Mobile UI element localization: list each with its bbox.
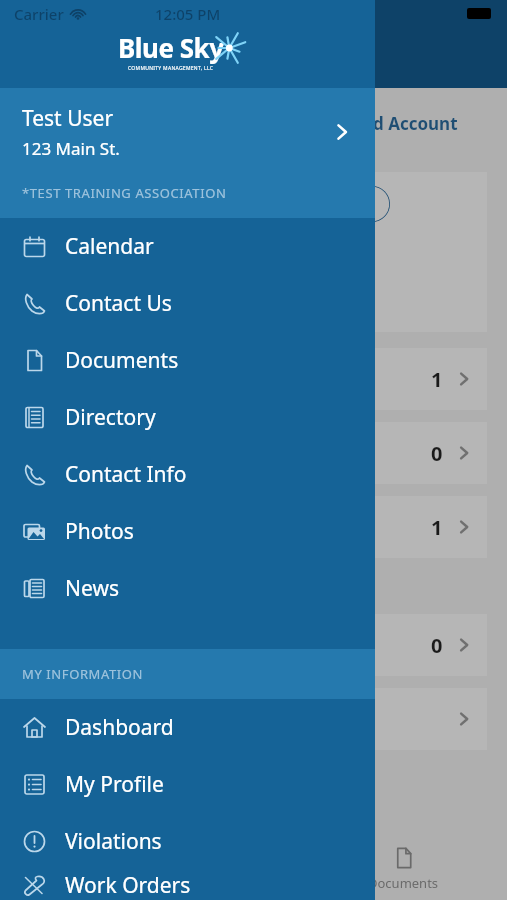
button[interactable]: Directory — [0, 389, 375, 446]
button[interactable]: Dashboard — [0, 699, 375, 756]
staticText: 123 Main St. — [22, 137, 120, 160]
button[interactable]: Documents — [0, 332, 375, 389]
staticText: Work Orders — [65, 871, 191, 900]
staticText: Dashboard — [65, 713, 174, 742]
staticText: Carrier — [14, 4, 64, 24]
staticText: Blue Sky — [118, 30, 224, 65]
staticText: 12:05 PM — [155, 4, 221, 24]
staticText: Calendar — [65, 232, 154, 261]
staticText: Contact Info — [65, 460, 187, 489]
button[interactable] — [300, 688, 487, 750]
button[interactable]: My Profile — [0, 756, 375, 813]
button[interactable]: Contact Us — [0, 275, 375, 332]
staticText: Directory — [65, 403, 156, 432]
staticText: 0 — [431, 440, 443, 467]
staticText: My Profile — [65, 770, 164, 799]
button[interactable]: Violations — [0, 813, 375, 870]
button[interactable]: 0 — [300, 614, 487, 676]
staticText: Documents — [368, 874, 439, 892]
staticText: 1 — [431, 514, 443, 541]
staticText: 1 — [431, 366, 443, 393]
staticText: Violations — [65, 827, 162, 856]
staticText: COMMUNITY MANAGEMENT, LLC — [128, 65, 214, 72]
button[interactable]: Photos — [0, 503, 375, 560]
staticText: Photos — [65, 517, 134, 546]
button[interactable]: 0 — [300, 422, 487, 484]
staticText: Contact Us — [65, 289, 172, 318]
button[interactable]: Calendar — [0, 218, 375, 275]
button[interactable]: News — [0, 560, 375, 617]
staticText: MY INFORMATION — [22, 665, 144, 683]
button[interactable]: Add Account — [0, 88, 507, 158]
button[interactable]: Account Info — [240, 186, 390, 222]
button[interactable]: Work Orders — [0, 870, 375, 900]
staticText: Add Account — [350, 112, 458, 135]
staticText: Test User — [22, 104, 114, 133]
staticText: News — [65, 574, 119, 603]
button[interactable]: Contact Info — [0, 446, 375, 503]
button[interactable]: 1 — [300, 496, 487, 558]
staticText: 0 — [431, 632, 443, 659]
button[interactable]: Test User — [0, 88, 375, 176]
button[interactable]: 1 — [300, 348, 487, 410]
staticText: *TEST TRAINING ASSOCIATION — [22, 184, 227, 202]
staticText: Documents — [65, 346, 179, 375]
